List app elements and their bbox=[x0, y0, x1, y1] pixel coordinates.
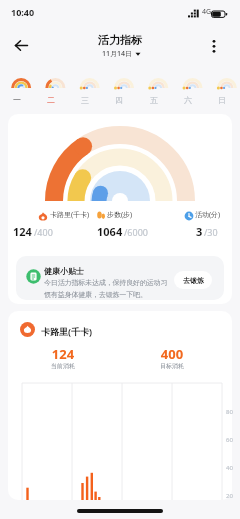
staticText: 当前消耗 bbox=[33, 362, 93, 370]
staticText: 去锻炼 bbox=[183, 276, 204, 285]
staticText: /6000 bbox=[124, 226, 148, 238]
staticText: 124 bbox=[33, 345, 93, 363]
staticText: 124 bbox=[13, 224, 32, 239]
button[interactable] bbox=[9, 34, 35, 58]
staticText: /400 bbox=[34, 226, 53, 238]
staticText: 二 bbox=[47, 95, 55, 105]
staticText: 40 bbox=[226, 464, 233, 472]
staticText: 卡路里(千卡) bbox=[41, 325, 93, 337]
staticText: 3 bbox=[196, 224, 203, 239]
staticText: 80 bbox=[226, 408, 233, 416]
staticText: 五 bbox=[150, 95, 158, 105]
staticText: 20 bbox=[226, 492, 233, 500]
button[interactable]: 五 bbox=[137, 93, 171, 107]
staticText: 惯有益身体健康，去锻炼一下吧。 bbox=[44, 290, 147, 299]
staticText: 4G bbox=[202, 7, 212, 17]
staticText: 三 bbox=[81, 95, 89, 105]
staticText: 活动(分) bbox=[195, 210, 221, 220]
staticText: /30 bbox=[204, 226, 218, 238]
staticText: 目标消耗 bbox=[142, 362, 202, 370]
staticText: 一 bbox=[13, 95, 21, 105]
button[interactable]: 四 bbox=[102, 93, 136, 107]
staticText: 60 bbox=[226, 436, 233, 444]
button[interactable]: 二 bbox=[34, 93, 68, 107]
staticText: 卡路里(千卡) bbox=[50, 210, 90, 220]
button[interactable]: 六 bbox=[171, 93, 205, 107]
staticText: 六 bbox=[184, 95, 192, 105]
staticText: 1064 bbox=[97, 224, 123, 239]
button[interactable]: 一 bbox=[0, 93, 34, 107]
staticText: 400 bbox=[142, 345, 202, 363]
button[interactable] bbox=[16, 256, 224, 300]
button[interactable]: 11月14日 bbox=[70, 48, 170, 60]
staticText: 10:40 bbox=[11, 6, 35, 18]
button[interactable]: 日 bbox=[205, 93, 239, 107]
staticText: 今日活力指标未达成，保持良好的运动习 bbox=[44, 278, 168, 287]
staticText: 11月14日 bbox=[102, 49, 133, 59]
staticText: 四 bbox=[115, 95, 123, 105]
button[interactable]: 去锻炼 bbox=[174, 271, 212, 289]
staticText: 步数(步) bbox=[107, 210, 133, 220]
staticText: 活力指标 bbox=[70, 33, 170, 47]
staticText: 健康小贴士 bbox=[44, 266, 84, 276]
staticText: 日 bbox=[218, 95, 226, 105]
button[interactable] bbox=[202, 34, 226, 58]
button[interactable]: 三 bbox=[68, 93, 102, 107]
